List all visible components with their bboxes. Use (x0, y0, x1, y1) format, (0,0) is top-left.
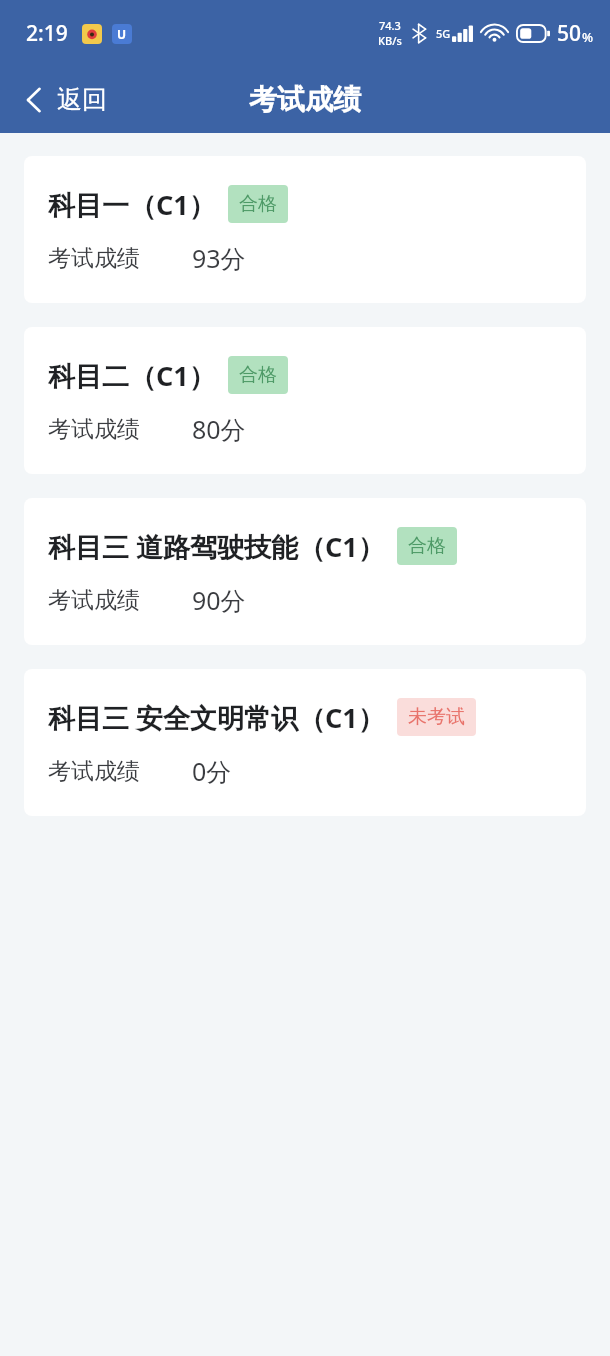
staticText: 考试成绩 (48, 415, 140, 444)
staticText: 90分 (192, 583, 246, 617)
other: 返回 (24, 86, 44, 114)
staticText: 0分 (192, 754, 232, 788)
staticText: 2:19 (26, 19, 68, 48)
staticText: 93分 (192, 241, 246, 275)
staticText: 科目三 道路驾驶技能（C1） (48, 528, 385, 565)
staticText: 考试成绩 (48, 244, 140, 273)
staticText: 未考试 (408, 705, 465, 729)
staticText: U (117, 26, 127, 42)
button[interactable]: 返回 (0, 76, 125, 123)
button[interactable]: 科目一（C1） (24, 156, 586, 303)
staticText: KB/s (378, 33, 402, 48)
staticText: 80分 (192, 412, 246, 446)
staticText: 74.3 (379, 18, 401, 33)
button[interactable]: 科目三 安全文明常识（C1） (24, 669, 586, 816)
staticText: 考试成绩 (48, 586, 140, 615)
staticText: % (582, 28, 594, 46)
button[interactable]: 科目三 道路驾驶技能（C1） (24, 498, 586, 645)
staticText: 合格 (239, 363, 277, 387)
staticText: 合格 (408, 534, 446, 558)
staticText: 科目三 安全文明常识（C1） (48, 699, 385, 736)
staticText: 科目二（C1） (48, 357, 216, 394)
staticText: 合格 (239, 192, 277, 216)
staticText: 科目一（C1） (48, 186, 216, 223)
staticText: 50 (557, 19, 582, 48)
staticText: 5G (436, 26, 451, 41)
staticText: 考试成绩 (48, 757, 140, 786)
staticText: 考试成绩 (249, 82, 361, 117)
button[interactable]: 科目二（C1） (24, 327, 586, 474)
staticText: 返回 (57, 84, 107, 115)
